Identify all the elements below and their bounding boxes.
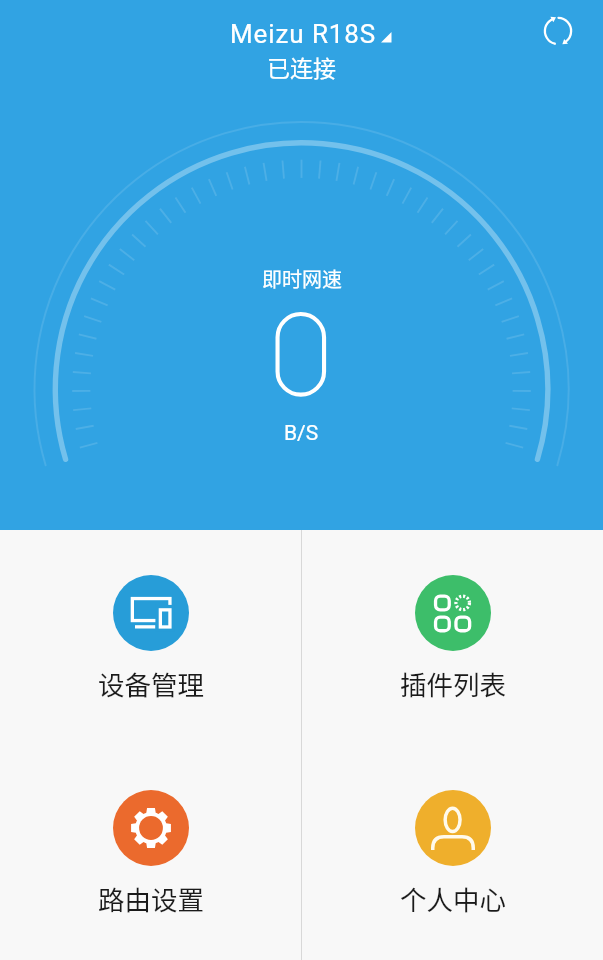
staticText: B/S xyxy=(284,421,319,446)
button[interactable]: 路由设置 xyxy=(0,745,301,960)
staticText: 插件列表 xyxy=(400,664,506,702)
staticText: 已连接 xyxy=(267,50,336,83)
button[interactable]: Meizu R18S xyxy=(230,19,391,49)
staticText: 即时网速 xyxy=(262,264,342,293)
button[interactable]: 个人中心 xyxy=(302,745,603,960)
staticText: 个人中心 xyxy=(400,879,506,917)
staticText: 路由设置 xyxy=(98,879,204,917)
button[interactable]: Refresh xyxy=(534,7,582,55)
staticText: Meizu R18S xyxy=(230,19,377,49)
button[interactable]: 插件列表 xyxy=(302,530,603,745)
button[interactable]: 设备管理 xyxy=(0,530,301,745)
staticText: 设备管理 xyxy=(98,664,204,702)
